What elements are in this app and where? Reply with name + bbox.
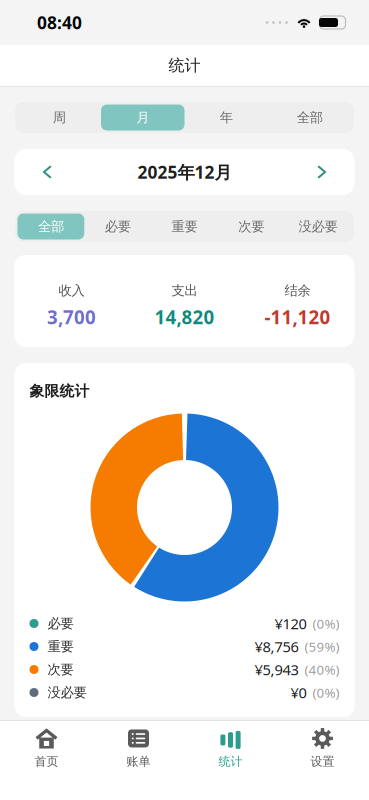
button[interactable]: 周 <box>17 104 101 130</box>
button[interactable]: 首页 <box>0 722 92 774</box>
button[interactable]: 账单 <box>92 722 184 774</box>
button[interactable]: 次要 <box>218 213 285 239</box>
staticText: (0%) <box>312 614 339 633</box>
staticText: 次要 <box>238 218 264 235</box>
button[interactable]: 重要 <box>151 213 218 239</box>
staticText: 14,820 <box>154 304 214 330</box>
button[interactable]: 必要 <box>84 213 151 239</box>
staticText: 收入 <box>58 282 84 299</box>
staticText: 结余 <box>284 282 310 299</box>
button[interactable]: 全部 <box>268 104 351 130</box>
staticText: 首页 <box>34 754 58 769</box>
staticText: 设置 <box>310 754 334 769</box>
staticText: 必要 <box>105 218 131 235</box>
staticText: 2025年12月 <box>137 160 231 184</box>
staticText: 重要 <box>171 218 197 235</box>
staticText: -11,120 <box>264 304 330 330</box>
staticText: ¥120 <box>274 613 306 633</box>
staticText: 账单 <box>126 754 150 769</box>
staticText: 08:40 <box>37 11 82 34</box>
staticText: 全部 <box>297 109 323 126</box>
staticText: 统计 <box>218 754 242 769</box>
button[interactable]: 上个月 <box>14 151 68 192</box>
button[interactable]: 月 <box>101 104 184 130</box>
button[interactable]: 下个月 <box>301 151 354 192</box>
button[interactable]: 设置 <box>276 722 368 774</box>
button[interactable]: 没必要 <box>285 213 351 239</box>
staticText: ¥8,756 <box>254 636 298 656</box>
staticText: 月 <box>136 109 149 126</box>
button[interactable]: 年 <box>184 104 268 130</box>
staticText: 重要 <box>47 638 73 655</box>
staticText: 没必要 <box>47 684 86 701</box>
staticText: (59%) <box>304 637 339 656</box>
staticText: 周 <box>53 109 66 126</box>
staticText: 年 <box>220 109 233 126</box>
button[interactable]: 统计 <box>184 722 276 774</box>
staticText: (0%) <box>312 683 339 702</box>
staticText: 必要 <box>47 615 73 632</box>
staticText: 全部 <box>38 218 64 235</box>
staticText: (40%) <box>304 660 339 679</box>
staticText: 支出 <box>171 282 197 299</box>
staticText: 统计 <box>168 55 200 76</box>
staticText: ¥0 <box>290 682 306 702</box>
staticText: 次要 <box>47 661 73 678</box>
staticText: 没必要 <box>299 218 338 235</box>
button[interactable]: 全部 <box>17 213 84 239</box>
staticText: 象限统计 <box>29 382 89 400</box>
staticText: 3,700 <box>47 304 96 330</box>
staticText: ¥5,943 <box>254 659 298 679</box>
